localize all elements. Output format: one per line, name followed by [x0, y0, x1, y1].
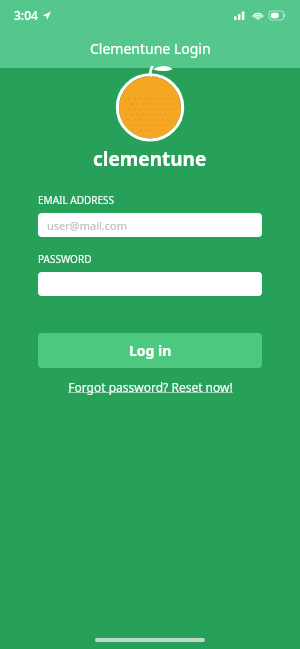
staticText: EMAIL ADDRESS: [38, 193, 114, 207]
button[interactable]: Forgot password? Reset now!: [38, 379, 262, 395]
other: Cellular signal: [234, 11, 247, 20]
staticText: Log in: [129, 341, 172, 360]
button[interactable]: user@mail.com: [38, 213, 262, 237]
button[interactable]: Log in: [38, 333, 262, 368]
staticText: user@mail.com: [47, 218, 128, 233]
other: Battery: [269, 11, 286, 20]
staticText: 3:04: [14, 7, 38, 23]
other: Location: [42, 11, 51, 20]
button[interactable]: [38, 272, 262, 296]
staticText: clementune: [93, 146, 207, 172]
other: Wi-Fi: [252, 11, 264, 20]
staticText: Clementune Login: [90, 39, 211, 58]
staticText: PASSWORD: [38, 252, 92, 266]
staticText: Forgot password? Reset now!: [68, 379, 233, 395]
